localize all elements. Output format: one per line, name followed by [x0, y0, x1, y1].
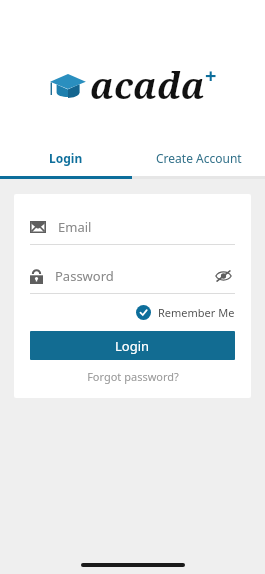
staticText: + — [205, 62, 217, 89]
staticText: Login — [115, 337, 150, 355]
button[interactable]: Login — [0, 140, 132, 176]
staticText: acada — [90, 61, 205, 110]
staticText: Login — [49, 150, 83, 166]
button[interactable]: Remember Me — [136, 303, 235, 322]
staticText: Email — [58, 218, 92, 236]
staticText: Password — [55, 267, 211, 285]
button[interactable]: Login — [30, 331, 235, 360]
staticText: Create Account — [156, 150, 242, 166]
staticText: Remember Me — [158, 305, 235, 320]
button[interactable]: Email — [30, 210, 235, 244]
staticText: Forgot password? — [87, 369, 179, 384]
button[interactable]: Show password — [211, 264, 235, 288]
button[interactable]: Password — [30, 259, 235, 293]
button[interactable]: Create Account — [132, 140, 265, 176]
button[interactable]: Forgot password? — [30, 369, 235, 384]
